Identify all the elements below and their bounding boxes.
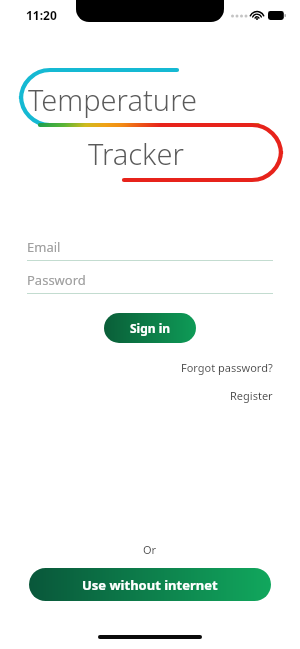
staticText: Password (27, 271, 86, 289)
staticText: Use without internet (82, 576, 218, 594)
button[interactable]: Register (27, 388, 273, 403)
staticText: 11:20 (26, 7, 57, 23)
staticText: Temperature (28, 80, 197, 119)
button[interactable]: Forgot password? (27, 360, 273, 375)
button[interactable]: Use without internet (29, 568, 271, 601)
button[interactable]: Sign in (104, 313, 196, 343)
staticText: Email (27, 238, 61, 256)
button[interactable]: Password (27, 271, 273, 294)
staticText: Forgot password? (181, 360, 273, 375)
staticText: Sign in (130, 320, 171, 336)
staticText: Or (143, 542, 157, 557)
staticText: Tracker (88, 134, 184, 173)
button[interactable]: Email (27, 238, 273, 261)
staticText: Register (230, 388, 273, 403)
